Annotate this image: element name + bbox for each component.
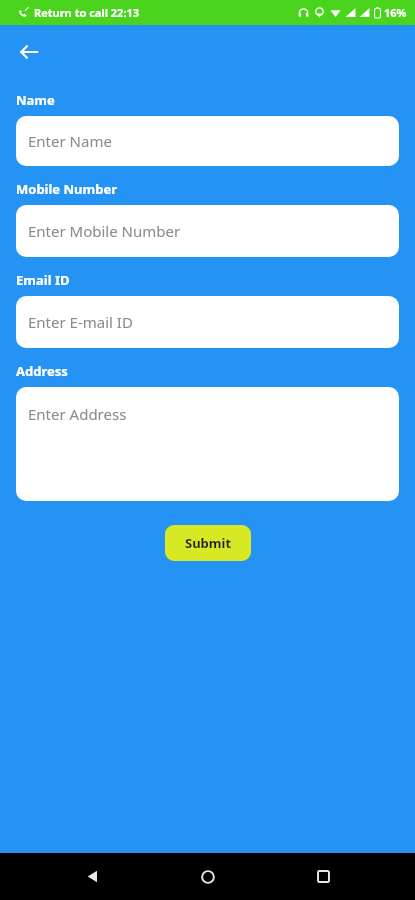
staticText: Submit: [185, 534, 232, 552]
staticText: Mobile Number: [16, 180, 117, 198]
button[interactable]: Enter Address: [16, 387, 399, 501]
staticText: Email ID: [16, 271, 70, 289]
staticText: 16%: [384, 5, 407, 20]
button[interactable]: Back: [68, 853, 116, 900]
staticText: Name: [16, 91, 55, 109]
button[interactable]: Enter E-mail ID: [16, 296, 399, 348]
staticText: Return to call 22:13: [34, 5, 140, 20]
staticText: Enter E-mail ID: [28, 312, 133, 332]
button[interactable]: Enter Mobile Number: [16, 205, 399, 257]
staticText: Enter Mobile Number: [28, 221, 181, 241]
button[interactable]: Enter Name: [16, 116, 399, 166]
staticText: Enter Address: [28, 404, 127, 424]
button[interactable]: Recents: [299, 853, 347, 900]
button[interactable]: Home: [184, 853, 232, 900]
button[interactable]: Back: [12, 35, 46, 69]
staticText: Enter Name: [28, 131, 112, 151]
staticText: Address: [16, 362, 68, 380]
button[interactable]: Submit: [165, 525, 251, 561]
